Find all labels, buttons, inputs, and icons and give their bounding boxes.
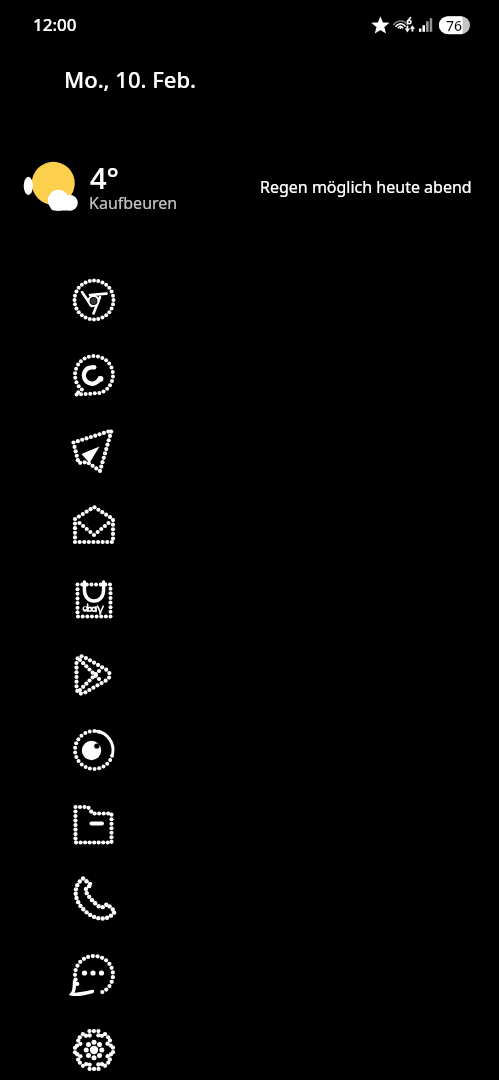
button[interactable]: Telegram <box>63 412 124 487</box>
button[interactable]: Gmail <box>63 487 124 562</box>
staticText: Regen möglich heute abend <box>260 176 472 198</box>
button[interactable]: WhatsApp <box>63 337 124 412</box>
button[interactable]: Chrome <box>63 262 124 337</box>
staticText: 4° <box>90 158 119 197</box>
button[interactable]: Messages <box>63 937 124 1012</box>
button[interactable]: Camera <box>63 712 124 787</box>
staticText: Mo., 10. Feb. <box>64 64 197 94</box>
staticText: Kaufbeuren <box>89 192 178 214</box>
button[interactable]: Play Store <box>63 637 124 712</box>
staticText: 12:00 <box>33 13 77 36</box>
button[interactable]: Files <box>63 787 124 862</box>
button[interactable]: Phone <box>63 862 124 937</box>
staticText: 76 <box>446 16 463 35</box>
button[interactable]: eBay <box>63 562 124 637</box>
button[interactable]: Settings <box>63 1012 124 1080</box>
